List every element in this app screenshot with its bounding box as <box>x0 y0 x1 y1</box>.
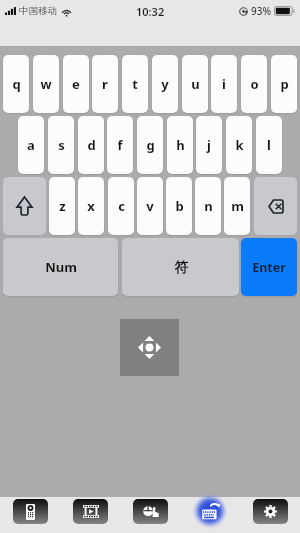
staticText: p <box>280 75 289 93</box>
staticText: s <box>58 136 65 154</box>
button[interactable]: c <box>108 177 134 235</box>
staticText: m <box>231 197 244 215</box>
button[interactable]: y <box>152 55 178 113</box>
staticText: n <box>204 197 213 215</box>
staticText: q <box>12 75 21 93</box>
staticText: u <box>191 75 200 93</box>
button[interactable]: h <box>167 116 193 174</box>
button[interactable]: Media <box>60 497 120 533</box>
button[interactable]: m <box>224 177 250 235</box>
staticText: b <box>175 197 184 215</box>
button[interactable]: g <box>137 116 163 174</box>
staticText: v <box>146 197 154 215</box>
button[interactable]: Settings <box>240 497 300 533</box>
button[interactable]: k <box>226 116 252 174</box>
button[interactable]: z <box>49 177 75 235</box>
staticText: x <box>87 197 95 215</box>
button[interactable]: f <box>107 116 133 174</box>
staticText: z <box>59 197 66 215</box>
staticText: g <box>146 136 155 154</box>
button[interactable]: o <box>241 55 267 113</box>
button[interactable]: l <box>256 116 282 174</box>
staticText: k <box>235 136 244 154</box>
staticText: j <box>207 136 211 154</box>
staticText: 93% <box>251 4 271 18</box>
button[interactable]: Mouse <box>120 497 180 533</box>
staticText: h <box>176 136 185 154</box>
staticText: w <box>40 75 52 93</box>
button[interactable]: s <box>48 116 74 174</box>
staticText: Enter <box>252 259 286 276</box>
staticText: e <box>72 75 80 93</box>
button[interactable]: i <box>211 55 237 113</box>
button[interactable]: x <box>78 177 104 235</box>
button[interactable]: d <box>78 116 104 174</box>
staticText: l <box>267 136 271 154</box>
staticText: c <box>118 197 125 215</box>
staticText: r <box>102 75 108 93</box>
button[interactable]: Num <box>3 238 118 296</box>
button[interactable]: r <box>92 55 118 113</box>
button[interactable]: t <box>122 55 148 113</box>
button[interactable]: b <box>166 177 192 235</box>
staticText: i <box>222 75 226 93</box>
button[interactable]: w <box>33 55 59 113</box>
button[interactable]: Directional pad <box>120 319 179 376</box>
button[interactable]: Keyboard <box>180 497 240 533</box>
button[interactable]: u <box>182 55 208 113</box>
button[interactable]: Backspace <box>254 177 297 235</box>
staticText: y <box>161 75 169 93</box>
staticText: d <box>87 136 96 154</box>
staticText: t <box>132 75 138 93</box>
button[interactable]: 符 <box>122 238 239 296</box>
staticText: 符 <box>174 259 188 276</box>
button[interactable]: Remote <box>0 497 60 533</box>
staticText: Num <box>45 258 77 276</box>
staticText: 中国移动 <box>19 5 57 17</box>
staticText: f <box>117 136 123 154</box>
button[interactable]: Enter <box>241 238 297 296</box>
button[interactable]: j <box>196 116 222 174</box>
button[interactable]: n <box>195 177 221 235</box>
button[interactable]: q <box>3 55 29 113</box>
button[interactable]: p <box>271 55 297 113</box>
button[interactable]: Shift <box>3 177 46 235</box>
staticText: a <box>27 136 35 154</box>
staticText: 10:32 <box>136 4 165 19</box>
staticText: o <box>250 75 259 93</box>
button[interactable]: a <box>18 116 44 174</box>
button[interactable]: e <box>63 55 89 113</box>
button[interactable]: v <box>137 177 163 235</box>
